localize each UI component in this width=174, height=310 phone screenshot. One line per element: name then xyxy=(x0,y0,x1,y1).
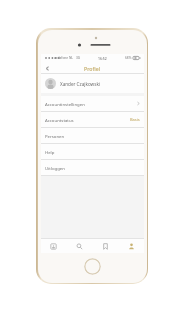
staticText: Uitloggen xyxy=(45,165,65,171)
staticText: Accountinstellingen xyxy=(45,101,85,107)
staticText: Profiel xyxy=(84,65,101,72)
staticText: Xander Czajkowski xyxy=(60,81,101,87)
button[interactable]: Accountstatus xyxy=(41,112,144,127)
button[interactable]: Home xyxy=(84,258,101,275)
button[interactable]: Personen xyxy=(41,128,144,143)
button[interactable]: Home xyxy=(41,239,66,253)
staticText: Personen xyxy=(45,133,65,139)
staticText: Basis xyxy=(130,117,140,122)
button[interactable]: Bookmarks xyxy=(92,239,118,253)
button[interactable]: Help xyxy=(41,144,144,159)
button[interactable]: Uitloggen xyxy=(41,160,144,175)
button[interactable]: Search xyxy=(66,239,92,253)
staticText: vodafone NL xyxy=(54,56,74,60)
staticText: Accountstatus xyxy=(45,117,74,123)
staticText: Help xyxy=(45,149,55,155)
staticText: 16:52 xyxy=(98,56,107,61)
staticText: 68% xyxy=(125,56,132,60)
button[interactable]: Xander Czajkowski xyxy=(41,74,144,93)
button[interactable]: Accountinstellingen xyxy=(41,96,144,111)
button[interactable]: Back xyxy=(41,62,53,74)
button[interactable]: Profile xyxy=(118,239,144,253)
staticText: 3G xyxy=(76,56,81,60)
